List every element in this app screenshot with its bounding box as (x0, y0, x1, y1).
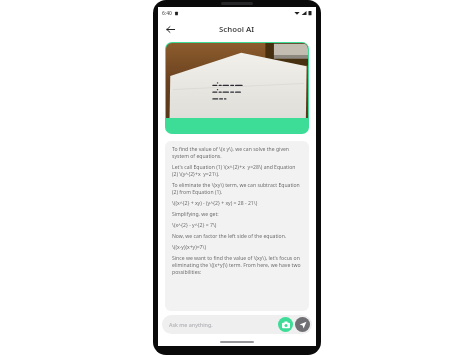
button[interactable]: Take photo (278, 317, 293, 332)
staticText: \(x^{2} - y^{2} = 7\) (172, 222, 217, 229)
staticText: Let's call Equation (1) \(x^{2}+x y=28\)… (172, 164, 302, 178)
button[interactable]: To find the value of \(x y\), we can sol… (165, 141, 309, 311)
button[interactable]: Send (295, 317, 310, 332)
staticText: To eliminate the \(xy\) term, we can sub… (172, 182, 302, 196)
staticText: School AI (219, 24, 255, 35)
button[interactable]: Back (163, 22, 178, 37)
staticText: Simplifying, we get: (172, 211, 219, 218)
staticText: 6:40 (162, 10, 172, 17)
button[interactable]: Attached photo of equations (165, 42, 309, 134)
staticText: Now, we can factor the left side of the … (172, 233, 287, 240)
staticText: \((x^{2} + xy) - (y^{2} + xy) = 28 - 21\… (172, 200, 258, 207)
staticText: Since we want to find the value of \(xy\… (172, 255, 302, 276)
staticText: \((x-y)(x+y)=7\) (172, 244, 206, 251)
staticText: To find the value of \(x y\), we can sol… (172, 146, 302, 160)
button[interactable]: Ask me anything. (162, 315, 278, 334)
staticText: Ask me anything. (169, 321, 213, 328)
